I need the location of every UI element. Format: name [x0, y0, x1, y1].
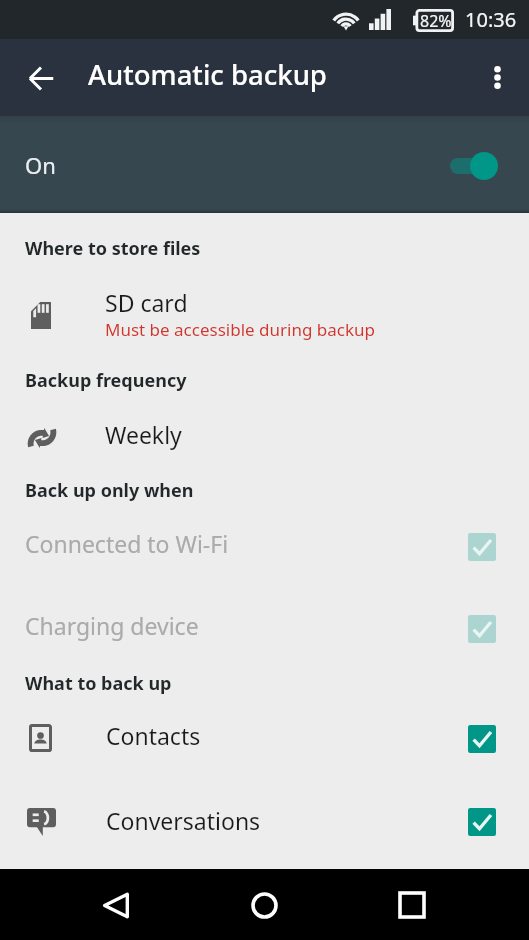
button[interactable]: On: [0, 116, 529, 213]
button[interactable]: More options: [473, 53, 521, 101]
staticText: Where to store files: [25, 236, 201, 261]
staticText: Backup frequency: [25, 368, 187, 393]
staticText: Conversations: [106, 805, 261, 836]
button[interactable]: Home: [238, 879, 290, 931]
staticText: Must be accessible during backup: [105, 318, 375, 341]
button[interactable]: Back: [90, 879, 142, 931]
staticText: On: [25, 150, 56, 180]
button[interactable]: Contacts: [0, 704, 529, 774]
staticText: SD card: [105, 287, 188, 318]
staticText: Charging device: [25, 610, 199, 641]
staticText: What to back up: [25, 671, 172, 696]
button[interactable]: Recents: [386, 879, 438, 931]
staticText: Contacts: [106, 720, 201, 751]
staticText: Back up only when: [25, 478, 194, 503]
staticText: Automatic backup: [88, 56, 327, 93]
button[interactable]: Charging device: [0, 594, 529, 664]
staticText: Weekly: [105, 419, 182, 450]
button[interactable]: Navigate up: [16, 53, 66, 103]
button[interactable]: Connected to Wi-Fi: [0, 512, 529, 582]
button[interactable]: Conversations: [0, 788, 529, 858]
staticText: Connected to Wi-Fi: [25, 528, 229, 559]
staticText: 10:36: [465, 6, 517, 33]
button[interactable]: Weekly: [0, 410, 529, 466]
staticText: 82%: [420, 10, 452, 32]
button[interactable]: SD card: [0, 280, 529, 346]
